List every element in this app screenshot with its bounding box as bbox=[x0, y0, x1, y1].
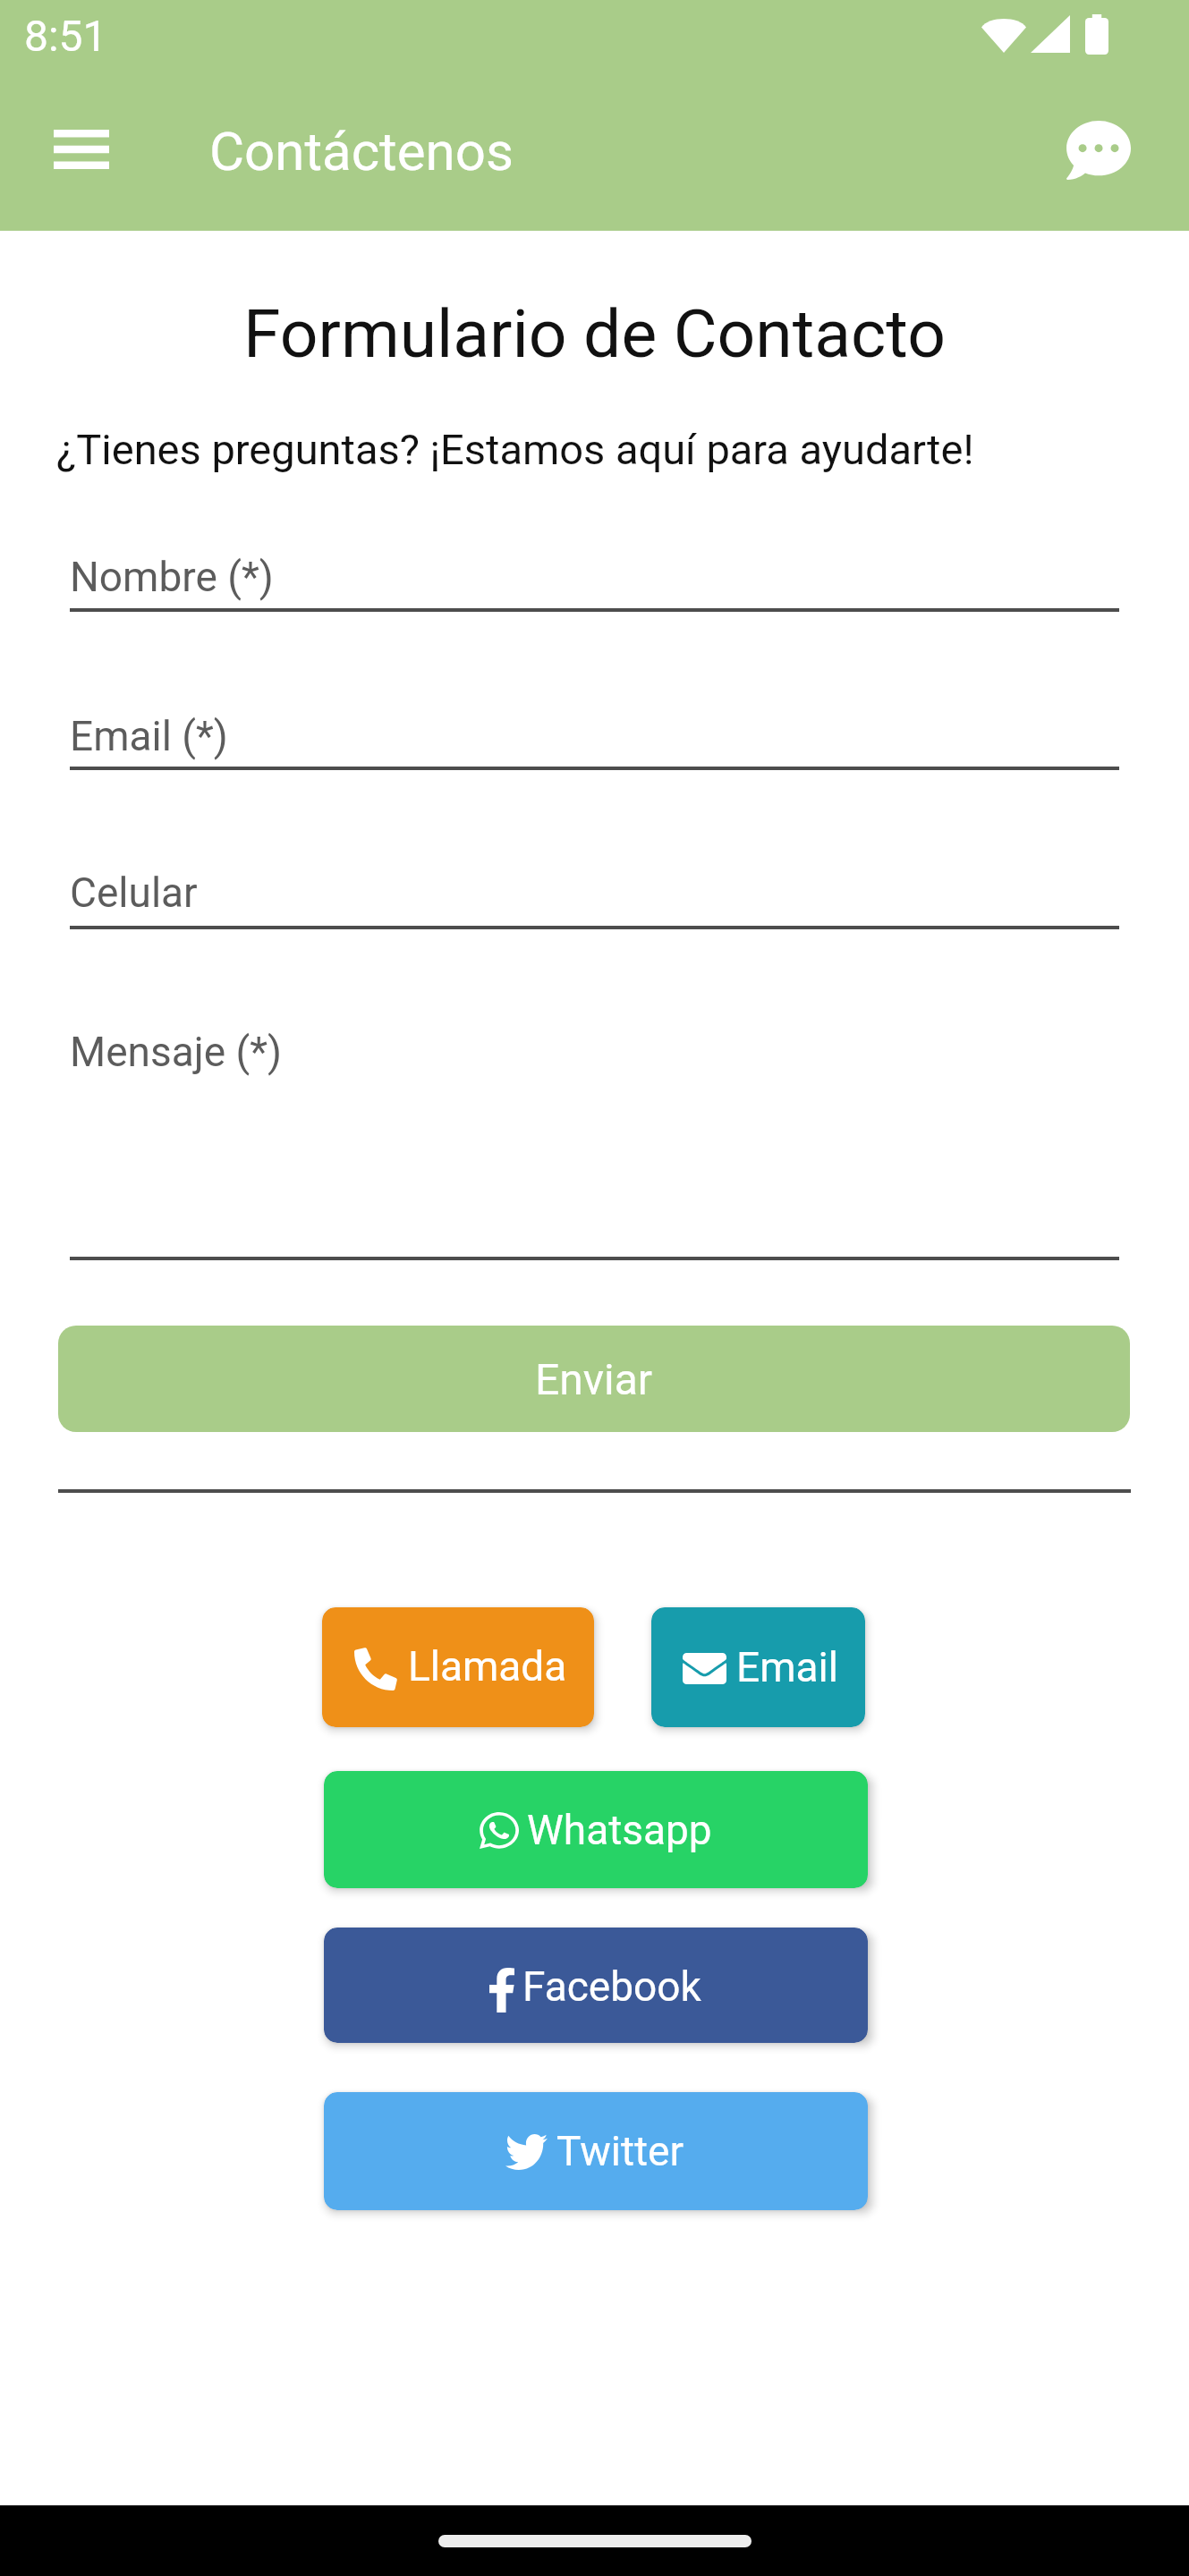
button[interactable]: Llamada bbox=[322, 1607, 594, 1727]
button[interactable]: Email bbox=[651, 1607, 865, 1727]
staticText: Celular bbox=[70, 869, 198, 917]
staticText: Enviar bbox=[535, 1354, 653, 1404]
staticText: Nombre (*) bbox=[70, 553, 274, 601]
staticText: Facebook bbox=[522, 1962, 701, 2011]
staticText: Contáctenos bbox=[209, 120, 514, 182]
button[interactable] bbox=[70, 852, 1119, 929]
staticText: Formulario de Contacto bbox=[0, 294, 1189, 373]
staticText: Llamada bbox=[408, 1642, 567, 1690]
staticText: Email bbox=[736, 1643, 838, 1691]
staticText: Whatsapp bbox=[527, 1806, 712, 1854]
button[interactable]: Twitter bbox=[324, 2092, 868, 2210]
staticText: Mensaje (*) bbox=[70, 1028, 283, 1076]
button[interactable] bbox=[70, 537, 1119, 612]
button[interactable]: Enviar bbox=[58, 1326, 1130, 1432]
button[interactable]: Facebook bbox=[324, 1928, 868, 2043]
staticText: ¿Tienes preguntas? ¡Estamos aquí para ay… bbox=[56, 425, 974, 474]
button[interactable]: Chat bbox=[1045, 98, 1152, 202]
staticText: Twitter bbox=[556, 2127, 684, 2175]
button[interactable] bbox=[70, 1012, 1119, 1260]
staticText: Email (*) bbox=[70, 712, 228, 760]
button[interactable] bbox=[70, 696, 1119, 771]
button[interactable]: Whatsapp bbox=[324, 1771, 868, 1888]
staticText: 8:51 bbox=[24, 11, 107, 61]
button[interactable]: Open navigation menu bbox=[28, 97, 135, 201]
